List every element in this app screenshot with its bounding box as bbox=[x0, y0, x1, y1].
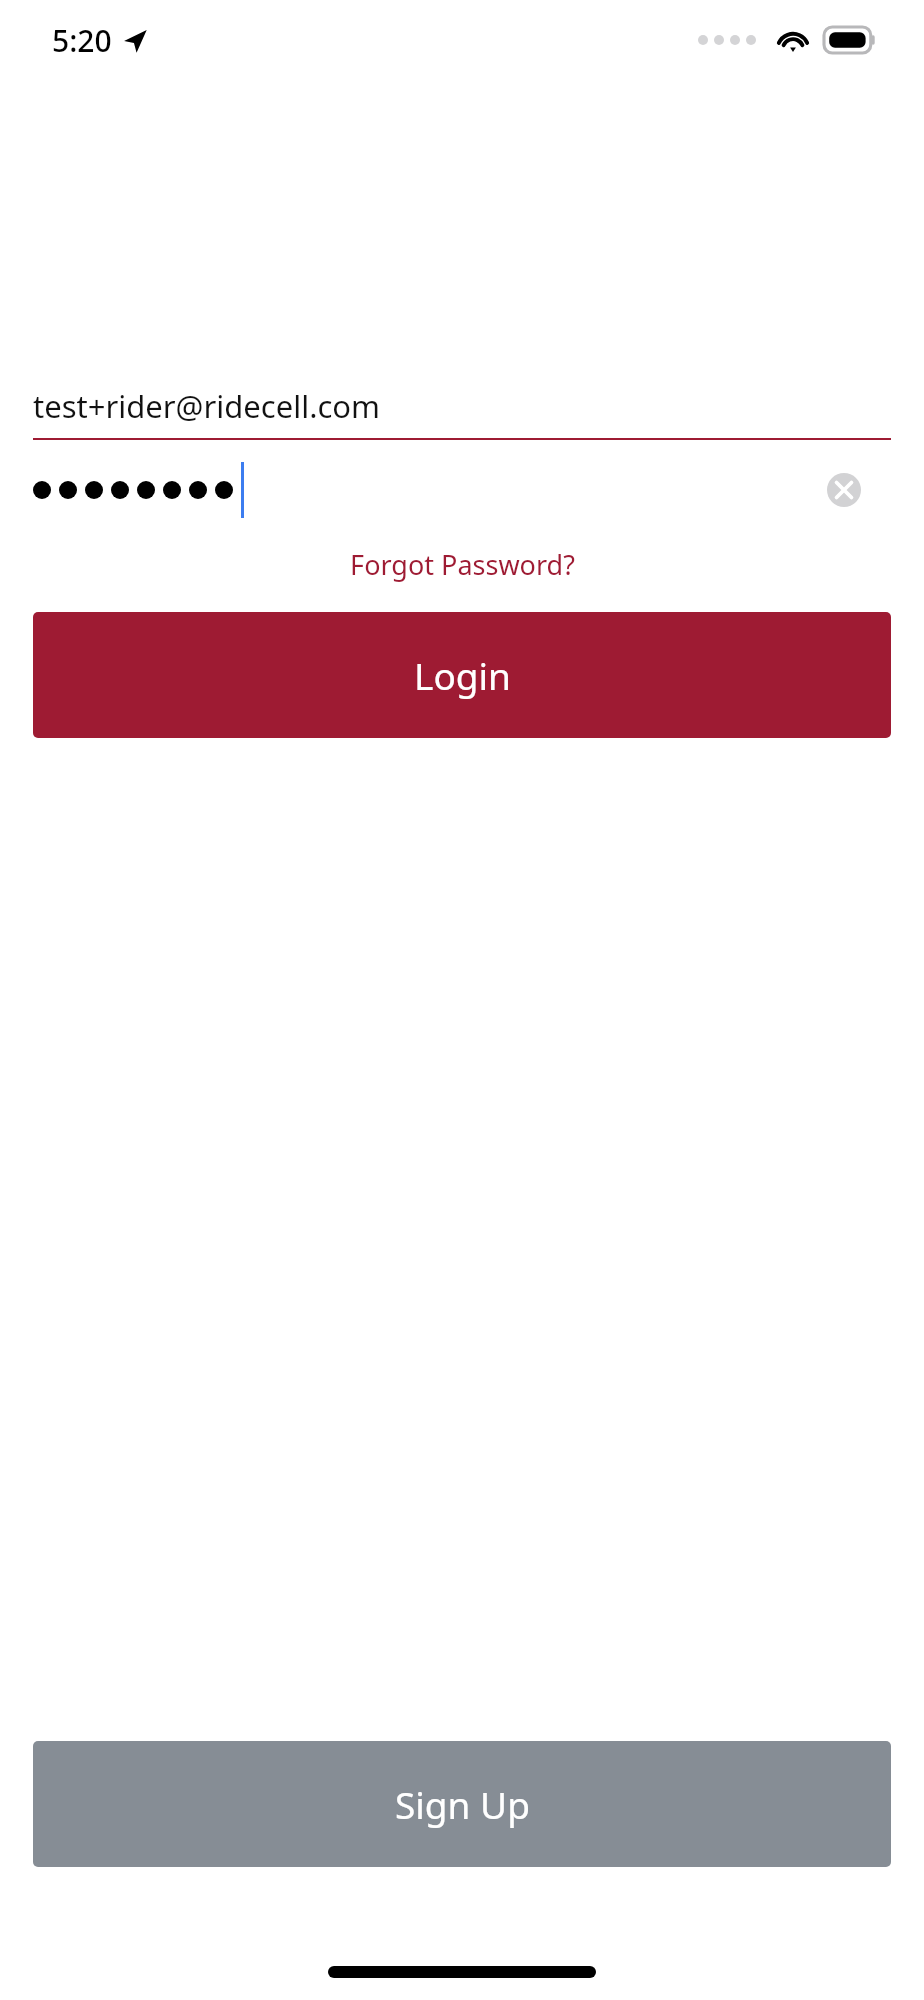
button[interactable]: Forgot Password? bbox=[0, 540, 924, 588]
staticText: Sign Up bbox=[395, 1779, 530, 1829]
staticText: Login bbox=[414, 650, 511, 700]
button[interactable]: Login bbox=[33, 612, 891, 738]
staticText: test+rider@ridecell.com bbox=[33, 385, 381, 427]
button[interactable]: Sign Up bbox=[33, 1741, 891, 1867]
staticText: Forgot Password? bbox=[350, 546, 575, 583]
staticText: 5:20 bbox=[52, 20, 112, 61]
button[interactable]: Clear password bbox=[827, 473, 861, 507]
button[interactable]: Clear password bbox=[0, 462, 924, 518]
button[interactable]: test+rider@ridecell.com bbox=[33, 378, 891, 434]
